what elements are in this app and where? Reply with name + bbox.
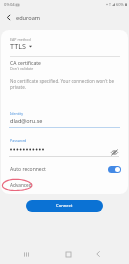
staticText: 60% bbox=[116, 2, 124, 7]
staticText: Advanced bbox=[10, 182, 32, 188]
staticText: dlad@oru.se bbox=[10, 117, 43, 124]
staticText: EAP method bbox=[10, 37, 31, 42]
button[interactable]: Navigate up bbox=[2, 11, 14, 23]
staticText: CA certificate bbox=[10, 60, 41, 67]
button[interactable]: Advanced bbox=[10, 182, 32, 188]
staticText: eduroam bbox=[16, 14, 41, 22]
button[interactable]: Back bbox=[90, 246, 106, 262]
staticText: Auto reconnect bbox=[10, 166, 46, 173]
button[interactable]: Show password bbox=[108, 146, 121, 159]
staticText: Identity bbox=[10, 111, 24, 116]
staticText: Don't validate bbox=[10, 66, 34, 71]
button[interactable]: Auto reconnect bbox=[10, 162, 121, 176]
staticText: Password bbox=[10, 138, 27, 143]
button[interactable]: Auto reconnect bbox=[108, 166, 121, 173]
staticText: T bbox=[109, 2, 111, 7]
staticText: 09:04 bbox=[4, 2, 15, 8]
staticText: TTLS bbox=[10, 41, 26, 51]
button[interactable]: TTLS bbox=[10, 41, 32, 51]
button[interactable]: Connect bbox=[26, 200, 103, 212]
button[interactable]: Home bbox=[60, 246, 76, 262]
staticText: Connect bbox=[56, 203, 73, 209]
button[interactable]: Recent apps bbox=[18, 246, 34, 262]
staticText: No certificate specified. Your connectio… bbox=[10, 78, 118, 90]
